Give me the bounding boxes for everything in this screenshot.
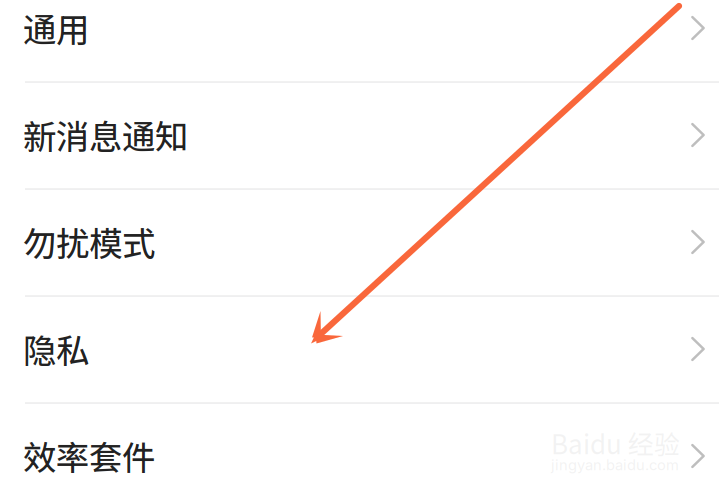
staticText: jingyan.baidu.com [551,456,679,474]
button[interactable]: 通用 [0,0,719,81]
button[interactable]: 效率套件 [0,402,719,493]
staticText: 隐私 [23,324,89,373]
staticText: 勿扰模式 [23,217,155,266]
staticText: 效率套件 [23,431,155,480]
button[interactable]: 勿扰模式 [0,188,719,295]
button[interactable]: 新消息通知 [0,81,719,188]
staticText: 新消息通知 [23,110,188,159]
staticText: 通用 [23,3,89,52]
button[interactable]: 隐私 [0,295,719,402]
staticText: Baidu 经验 [551,424,680,462]
